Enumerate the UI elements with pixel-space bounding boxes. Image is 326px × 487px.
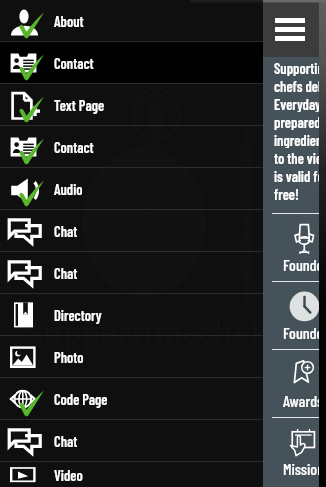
button[interactable]: Directory [0, 294, 263, 335]
staticText: Directory [54, 306, 102, 323]
staticText: Chat [54, 432, 78, 449]
staticText: chefs deliverin [274, 77, 326, 94]
button[interactable]: Open navigation menu [273, 18, 307, 40]
staticText: to the viewers [274, 149, 326, 166]
staticText: Video [54, 466, 83, 483]
staticText: Chat [54, 222, 78, 239]
staticText: free! [274, 185, 299, 202]
button[interactable]: Video [0, 462, 263, 487]
button[interactable]: Chat [0, 210, 263, 251]
staticText: Suppertimechef.com [26, 311, 326, 353]
staticText: Photo [54, 348, 84, 365]
staticText: Founded [283, 323, 326, 342]
staticText: About [54, 12, 84, 29]
staticText: is valid for a li [274, 167, 326, 184]
button[interactable]: Contact [0, 126, 263, 167]
staticText: Founder [283, 255, 326, 274]
button[interactable]: Awards [263, 350, 319, 417]
staticText: ingredients de [274, 131, 326, 148]
button[interactable]: Text Page [0, 84, 263, 125]
staticText: Everyday is a [274, 95, 326, 112]
staticText: prepared with [274, 113, 326, 130]
button[interactable]: Code Page [0, 378, 263, 419]
button[interactable]: Contact [0, 42, 263, 83]
button[interactable]: Founded [263, 282, 319, 349]
staticText: Audio [54, 180, 83, 197]
button[interactable]: Mission [263, 418, 319, 485]
staticText: Text Page [54, 96, 105, 113]
staticText: Code Page [54, 390, 108, 407]
staticText: Contact [54, 138, 94, 155]
staticText: Mission [283, 459, 325, 478]
staticText: Chat [54, 264, 78, 281]
button[interactable]: Chat [0, 420, 263, 461]
staticText: Contact [54, 54, 94, 71]
button[interactable]: Photo [0, 336, 263, 377]
staticText: Supporting lo [274, 59, 326, 76]
button[interactable]: Founder [263, 214, 319, 281]
button[interactable]: About [0, 0, 263, 41]
button[interactable]: Audio [0, 168, 263, 209]
button[interactable]: Chat [0, 252, 263, 293]
staticText: Awards [283, 391, 324, 410]
